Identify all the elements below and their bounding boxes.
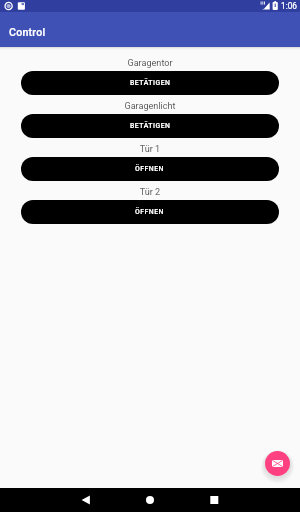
staticText: Tür 2 bbox=[0, 187, 300, 198]
button[interactable]: ÖFFNEN bbox=[21, 157, 279, 181]
staticText: Garagentor bbox=[0, 58, 300, 69]
staticText: BETÄTIGEN bbox=[130, 79, 171, 87]
button[interactable]: Send message bbox=[265, 451, 290, 476]
staticText: Garagenlicht bbox=[0, 101, 300, 112]
button[interactable]: ÖFFNEN bbox=[21, 200, 279, 224]
button[interactable]: BETÄTIGEN bbox=[21, 71, 279, 95]
button[interactable]: Back bbox=[74, 488, 98, 512]
button[interactable]: Home bbox=[138, 488, 162, 512]
staticText: ÖFFNEN bbox=[135, 208, 165, 216]
button[interactable]: BETÄTIGEN bbox=[21, 114, 279, 138]
staticText: BETÄTIGEN bbox=[130, 122, 171, 130]
staticText: ÖFFNEN bbox=[135, 165, 165, 173]
staticText: Tür 1 bbox=[0, 144, 300, 155]
staticText: Control bbox=[9, 26, 46, 38]
button[interactable]: Recent apps bbox=[202, 488, 226, 512]
staticText: 1:06 bbox=[281, 1, 297, 11]
